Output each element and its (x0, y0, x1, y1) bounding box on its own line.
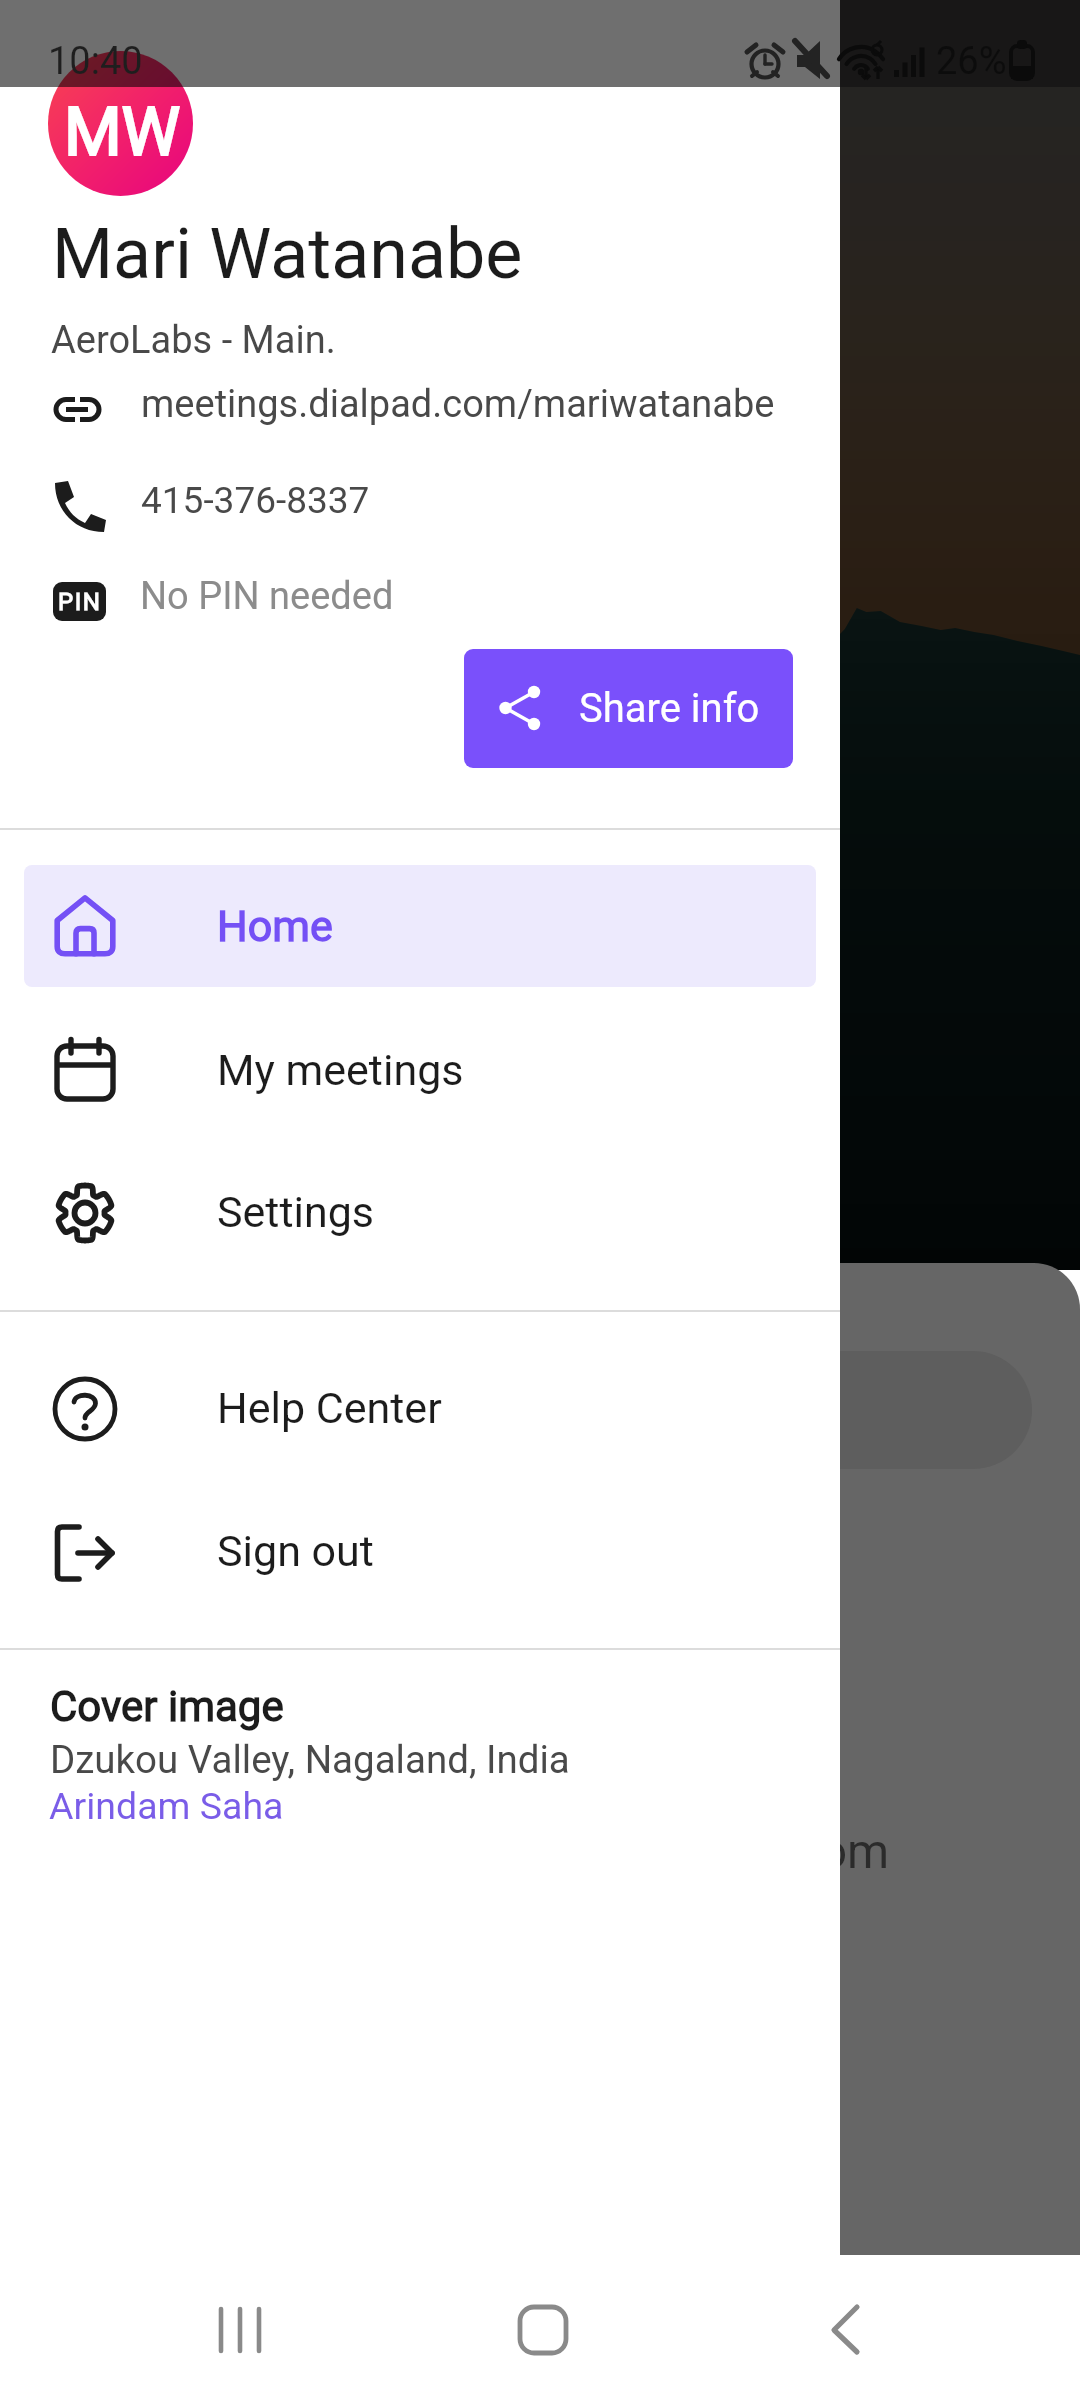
staticText: No PIN needed (140, 574, 394, 619)
button[interactable]: Back (720, 2255, 1080, 2400)
button[interactable] (0, 1344, 840, 1474)
button[interactable]: Share info (464, 649, 793, 768)
button[interactable]: Profile avatar (48, 51, 193, 196)
button[interactable]: Home (24, 865, 816, 987)
staticText: My meetings (217, 1045, 464, 1095)
staticText: 26% (936, 39, 1007, 84)
staticText: 10:40 (48, 39, 143, 84)
staticText: Settings (217, 1187, 375, 1237)
staticText: 415-376-8337 (141, 479, 370, 522)
staticText: meetings.dialpad.com/mariwatanabe (141, 382, 775, 427)
staticText: meetings.dialpad.com (414, 1823, 890, 1879)
staticText: AeroLabs - Main. (51, 318, 336, 363)
staticText: Home (217, 901, 333, 951)
button[interactable] (0, 457, 840, 553)
staticText: Sign out (217, 1526, 374, 1576)
staticText: Share info (579, 685, 760, 732)
staticText: Mari Watanabe (52, 213, 523, 295)
staticText: MW (64, 94, 181, 171)
staticText: Dzukou Valley, Nagaland, India (50, 1737, 570, 1782)
staticText: PIN (58, 588, 102, 616)
staticText: Arindam Saha (49, 1784, 284, 1828)
button[interactable] (0, 362, 840, 458)
button[interactable] (44, 1784, 294, 1834)
button[interactable] (0, 1488, 840, 1618)
button[interactable] (0, 1148, 840, 1278)
button[interactable]: Home (360, 2255, 720, 2400)
button[interactable]: Recent apps (0, 2255, 360, 2400)
staticText: Cover image (50, 1682, 284, 1731)
staticText: Help Center (217, 1383, 442, 1433)
button[interactable] (0, 1004, 840, 1134)
button[interactable] (0, 553, 840, 649)
